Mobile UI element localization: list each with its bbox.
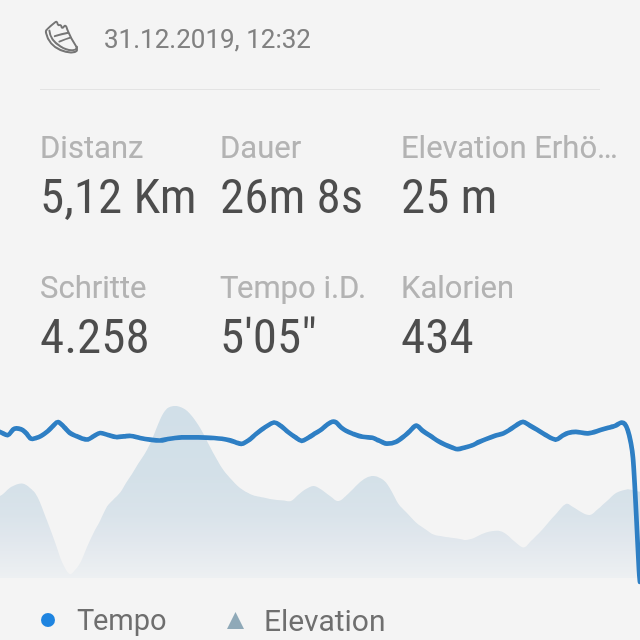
staticText: 26m 8s (220, 168, 364, 225)
staticText: Distanz (40, 129, 144, 165)
staticText: Schritte (40, 269, 147, 305)
button[interactable]: Tempo (34, 597, 174, 640)
button[interactable]: Dauer (220, 129, 401, 225)
button[interactable]: Elevation Erhö… (401, 129, 640, 225)
button[interactable]: Kalorien (401, 269, 640, 365)
staticText: Kalorien (401, 269, 515, 305)
staticText: Dauer (220, 129, 302, 165)
staticText: Tempo i.D. (220, 269, 367, 305)
button[interactable]: Tempo i.D. (220, 269, 401, 365)
staticText: Tempo (77, 603, 167, 637)
button[interactable]: Running activity (38, 15, 90, 67)
button[interactable]: Schritte (40, 269, 220, 365)
staticText: 5,12 Km (40, 168, 197, 225)
button[interactable]: Distanz (40, 129, 220, 225)
staticText: Elevation Erhö… (401, 129, 618, 165)
staticText: 434 (401, 308, 474, 365)
button[interactable]: Elevation (220, 597, 393, 640)
staticText: 4.258 (40, 308, 150, 365)
staticText: 25 m (401, 168, 498, 225)
staticText: 31.12.2019, 12:32 (104, 24, 311, 54)
staticText: Elevation (264, 603, 386, 637)
staticText: 5'05" (220, 308, 317, 365)
